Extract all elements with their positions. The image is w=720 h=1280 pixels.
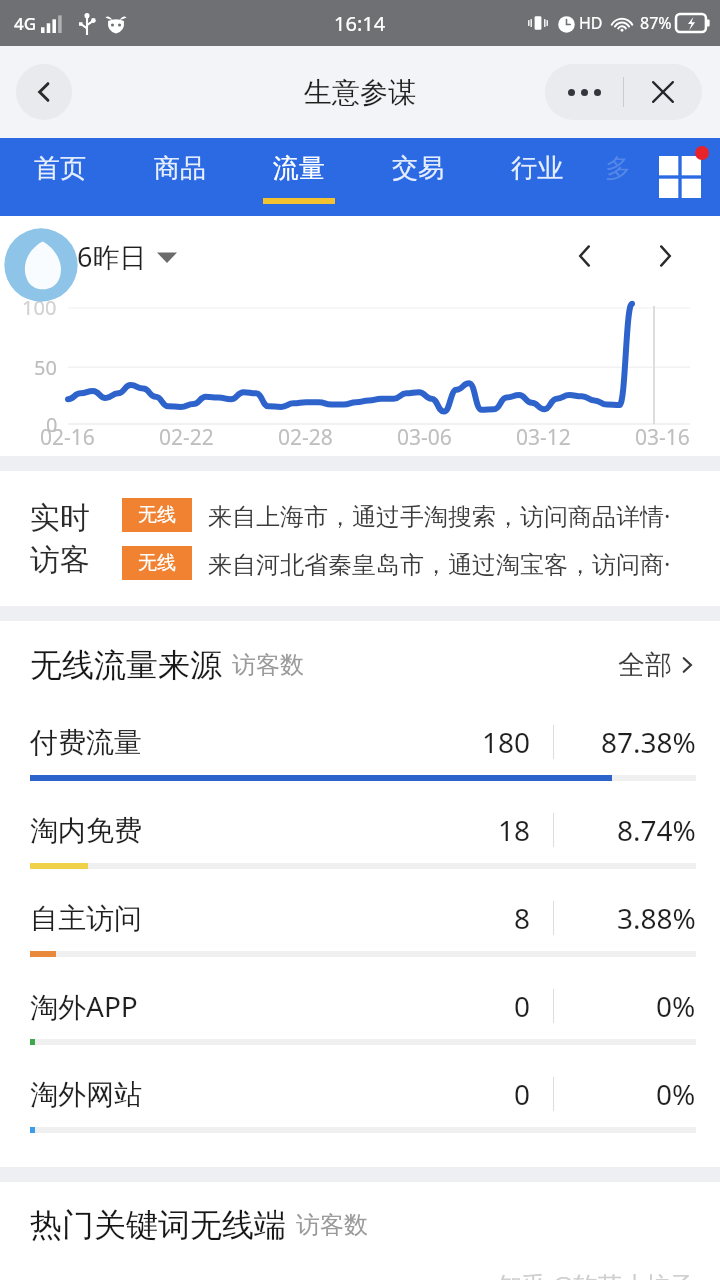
staticText: 无线 xyxy=(138,503,176,527)
button[interactable]: 付费流量 xyxy=(0,709,720,797)
staticText: 8 xyxy=(514,899,531,937)
staticText: 16:14 xyxy=(334,10,386,37)
button[interactable]: Close xyxy=(624,64,702,120)
staticText: 03-06 xyxy=(397,423,452,452)
staticText: 淘外网站 xyxy=(30,1077,142,1112)
button[interactable]: More options xyxy=(545,64,623,120)
staticText: 03-12 xyxy=(516,423,571,452)
button[interactable]: Next day xyxy=(636,227,694,285)
staticText: 100 xyxy=(22,294,57,321)
staticText: 180 xyxy=(482,723,531,761)
staticText: 87% xyxy=(640,12,672,34)
staticText: 热门关键词无线端 xyxy=(30,1205,286,1245)
staticText: 0 xyxy=(46,411,58,438)
staticText: 淘外APP xyxy=(30,987,138,1025)
staticText: 访客 xyxy=(30,541,90,579)
button[interactable]: All modules xyxy=(640,138,720,216)
staticText: 生意参谋 xyxy=(304,75,416,110)
button[interactable]: 多 xyxy=(596,138,640,216)
staticText: 02-16 xyxy=(40,423,95,452)
button[interactable]: 03-16昨日 xyxy=(22,238,177,275)
staticText: 4G xyxy=(14,12,37,35)
button[interactable]: 淘外APP xyxy=(0,973,720,1061)
staticText: 02-28 xyxy=(278,423,333,452)
button[interactable]: 实时 xyxy=(0,471,720,606)
button[interactable]: 淘内免费 xyxy=(0,797,720,885)
staticText: 全部 xyxy=(618,648,672,682)
button[interactable]: Previous day xyxy=(556,227,614,285)
staticText: 多 xyxy=(605,152,631,185)
button[interactable]: 交易 xyxy=(358,138,477,216)
staticText: 商品 xyxy=(154,152,206,185)
staticText: 03-16昨日 xyxy=(22,238,147,275)
staticText: 交易 xyxy=(392,152,444,185)
button[interactable]: 流量 xyxy=(239,138,358,216)
staticText: 访客数 xyxy=(296,1210,368,1240)
staticText: 3.88% xyxy=(617,899,696,937)
staticText: 无线 xyxy=(138,551,176,575)
staticText: 付费流量 xyxy=(30,725,142,760)
button[interactable]: Back xyxy=(16,64,72,120)
staticText: 18 xyxy=(498,811,531,849)
staticText: 访客数 xyxy=(232,650,304,680)
staticText: 来自上海市，通过手淘搜索，访问商品详情· xyxy=(208,499,671,532)
button[interactable]: 自主访问 xyxy=(0,885,720,973)
button[interactable]: Assistant xyxy=(2,226,80,304)
staticText: 0% xyxy=(656,987,696,1025)
staticText: HD xyxy=(579,12,603,34)
staticText: 8.74% xyxy=(617,811,696,849)
button[interactable]: 全部 xyxy=(618,648,696,682)
button[interactable]: 商品 xyxy=(120,138,239,216)
button[interactable]: 淘外网站 xyxy=(0,1061,720,1149)
staticText: 实时 xyxy=(30,499,90,537)
staticText: 0% xyxy=(656,1075,696,1113)
staticText: 02-22 xyxy=(159,423,214,452)
staticText: 0 xyxy=(514,1075,531,1113)
staticText: 淘内免费 xyxy=(30,813,142,848)
staticText: 0 xyxy=(514,987,531,1025)
staticText: 自主访问 xyxy=(30,901,142,936)
button[interactable]: 首页 xyxy=(0,138,120,216)
staticText: 无线流量来源 xyxy=(30,645,222,685)
staticText: 来自河北省秦皇岛市，通过淘宝客，访问商· xyxy=(208,547,671,580)
button[interactable]: 行业 xyxy=(477,138,596,216)
staticText: 知乎 @软萌小柿子 xyxy=(498,1268,694,1280)
staticText: 50 xyxy=(34,354,57,381)
staticText: 行业 xyxy=(511,152,563,185)
staticText: 87.38% xyxy=(601,723,696,761)
staticText: 03-16 xyxy=(635,423,690,452)
staticText: 首页 xyxy=(34,152,86,185)
staticText: 流量 xyxy=(273,152,325,185)
